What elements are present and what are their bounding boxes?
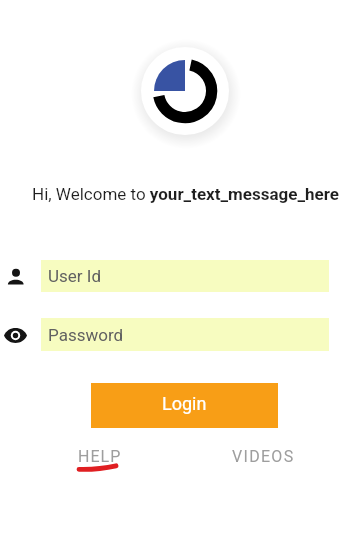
other: User xyxy=(7,268,25,285)
button[interactable]: VIDEOS xyxy=(225,444,301,468)
other: App logo xyxy=(141,47,229,135)
button[interactable]: HELP xyxy=(72,444,127,474)
staticText: Login xyxy=(162,393,207,414)
staticText: VIDEOS xyxy=(232,447,295,466)
button[interactable]: User Id xyxy=(41,260,329,292)
staticText: Password xyxy=(48,325,124,345)
button[interactable]: Login xyxy=(91,383,278,428)
staticText: User Id xyxy=(48,266,102,286)
button[interactable]: Password xyxy=(41,318,329,351)
staticText: HELP xyxy=(78,447,122,466)
staticText: Hi, Welcome to your_text_message_here xyxy=(32,184,339,204)
button[interactable]: Show password xyxy=(4,328,27,343)
